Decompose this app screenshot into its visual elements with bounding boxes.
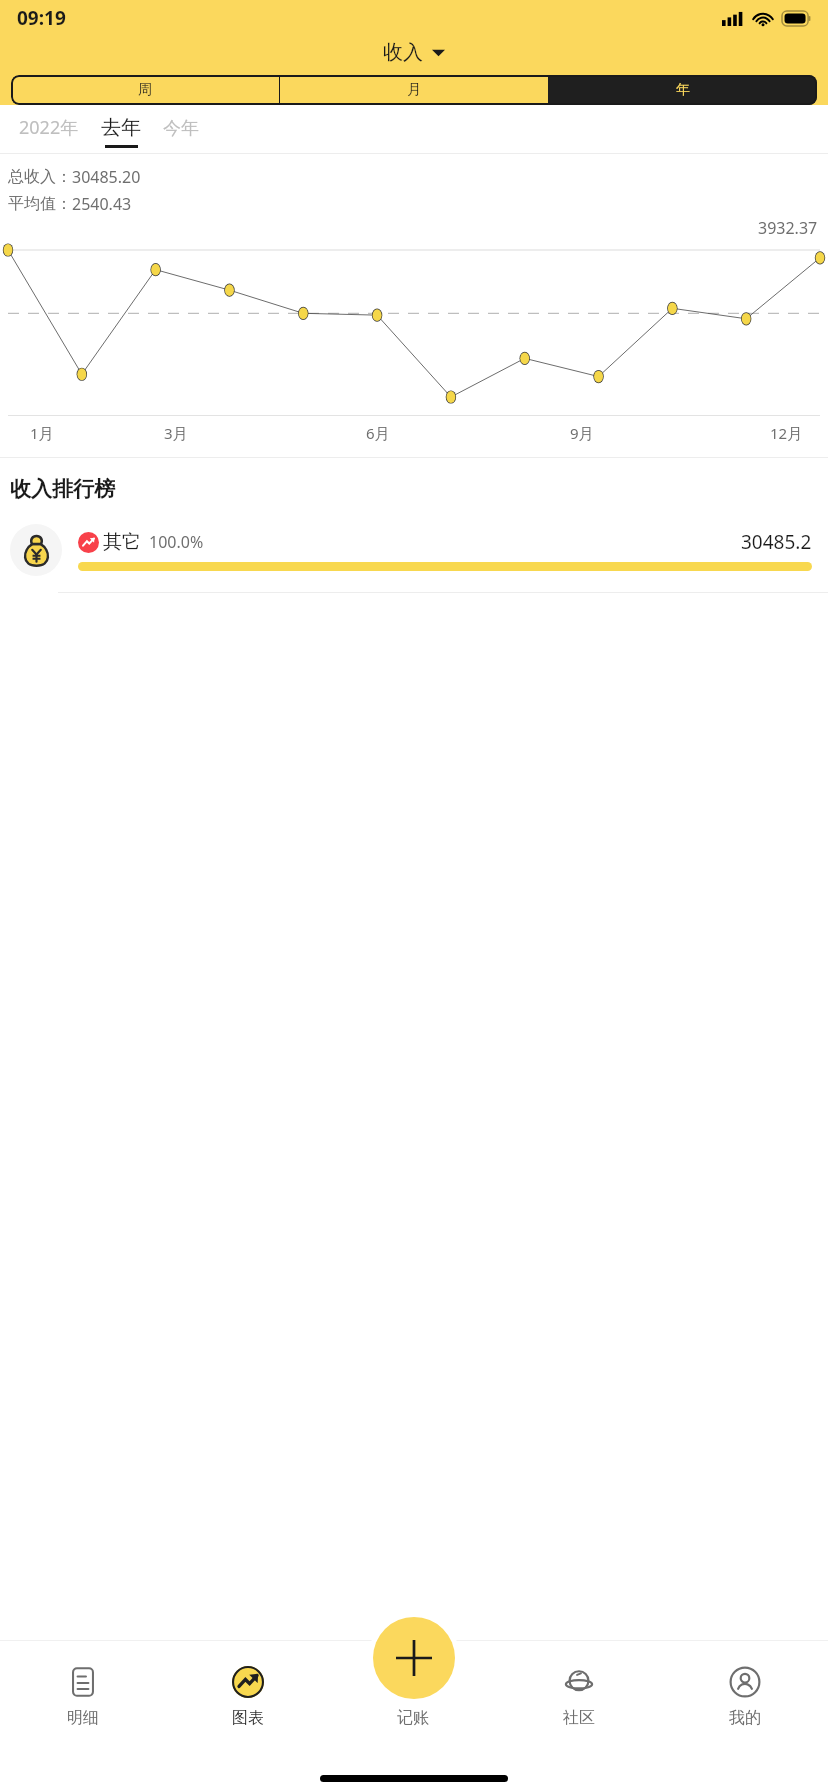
staticText: 30485.20	[72, 166, 141, 188]
staticText: 30485.2	[741, 529, 812, 555]
staticText: 2022年	[19, 115, 79, 140]
staticText: 图表	[232, 1708, 264, 1728]
staticText: 总收入：	[8, 167, 72, 187]
staticText: 收入	[383, 40, 423, 65]
staticText: 去年	[101, 115, 141, 140]
staticText: 我的	[729, 1708, 761, 1728]
button[interactable]: 其它	[0, 524, 828, 576]
staticText: 记账	[397, 1708, 429, 1728]
staticText: 1月	[30, 423, 54, 443]
staticText: 周	[138, 81, 152, 99]
button[interactable]: 今年	[163, 117, 199, 153]
staticText: 其它	[103, 530, 141, 554]
button[interactable]: 去年	[101, 115, 141, 153]
staticText: 收入排行榜	[10, 476, 115, 502]
button[interactable]: 月	[279, 75, 548, 105]
staticText: 今年	[163, 117, 199, 140]
staticText: 2540.43	[72, 193, 132, 215]
staticText: 平均值：	[8, 194, 72, 214]
button[interactable]: 记账	[330, 1640, 496, 1752]
staticText: 明细	[67, 1708, 99, 1728]
staticText: 3月	[164, 423, 188, 443]
button[interactable]: 社区	[496, 1640, 662, 1752]
staticText: 6月	[366, 423, 390, 443]
button[interactable]: 我的	[662, 1640, 828, 1752]
button[interactable]: 周	[11, 75, 279, 105]
button[interactable]: 2022年	[19, 115, 79, 153]
staticText: 月	[407, 81, 421, 99]
staticText: 社区	[563, 1708, 595, 1728]
button[interactable]: 收入	[383, 40, 445, 65]
staticText: 年	[676, 81, 690, 99]
staticText: 9月	[570, 423, 594, 443]
button[interactable]: 年	[548, 75, 817, 105]
button[interactable]: 明细	[0, 1640, 165, 1752]
button[interactable]: 记账 Add record	[373, 1617, 455, 1699]
button[interactable]: 图表	[165, 1640, 330, 1752]
staticText: 09:19	[17, 5, 66, 31]
staticText: 3932.37	[758, 217, 818, 239]
staticText: 12月	[770, 423, 803, 443]
staticText: 100.0%	[149, 531, 204, 553]
